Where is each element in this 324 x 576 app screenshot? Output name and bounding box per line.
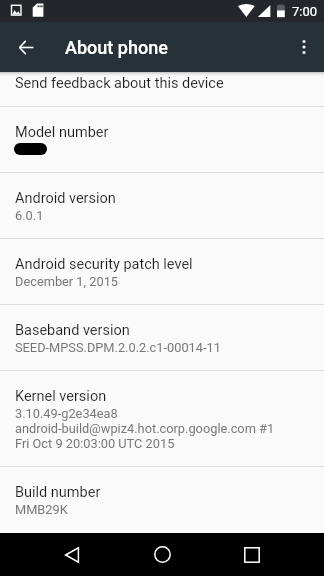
button[interactable]: Home xyxy=(140,533,184,576)
staticText: Android security patch level xyxy=(15,256,193,273)
button[interactable]: Model number xyxy=(0,107,324,172)
button[interactable]: Baseband version xyxy=(0,305,324,370)
staticText: 7:00 xyxy=(292,4,318,19)
staticText: MMB29K xyxy=(15,502,68,517)
staticText: Send feedback about this device xyxy=(15,75,224,92)
staticText: Kernel version xyxy=(15,388,107,405)
staticText: android-build@wpiz4.hot.corp.google.com … xyxy=(15,421,275,436)
button[interactable]: Android security patch level xyxy=(0,239,324,304)
staticText: Baseband version xyxy=(15,322,130,339)
staticText: Android version xyxy=(15,190,116,207)
button[interactable]: Kernel version xyxy=(0,371,324,466)
staticText: Model number xyxy=(15,124,109,141)
button[interactable]: Send feedback about this device xyxy=(0,57,324,106)
staticText: Fri Oct 9 20:03:00 UTC 2015 xyxy=(15,436,175,451)
staticText: About phone xyxy=(65,37,168,58)
button[interactable]: More options xyxy=(285,28,323,66)
button[interactable]: Android version xyxy=(0,173,324,238)
staticText: SEED-MPSS.DPM.2.0.2.c1-00014-11 xyxy=(15,340,221,355)
button[interactable]: Build number xyxy=(0,467,324,532)
staticText: 6.0.1 xyxy=(15,208,44,223)
button[interactable]: Back xyxy=(50,533,94,576)
button[interactable]: Recent apps xyxy=(230,533,274,576)
staticText: Build number xyxy=(15,484,101,501)
staticText: December 1, 2015 xyxy=(15,274,119,289)
button[interactable]: Navigate up xyxy=(7,28,45,66)
staticText: 3.10.49-g2e34ea8 xyxy=(15,406,118,421)
